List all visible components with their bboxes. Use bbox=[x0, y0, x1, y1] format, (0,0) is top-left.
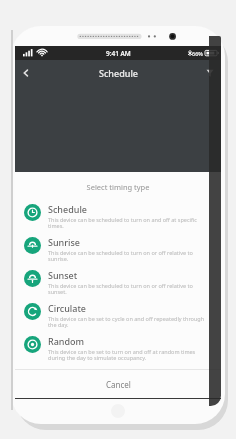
button[interactable]: Schedule bbox=[15, 200, 221, 233]
staticText: This device can be scheduled to turn on … bbox=[48, 282, 211, 296]
staticText: Cancel bbox=[106, 379, 131, 390]
staticText: Sunrise bbox=[48, 236, 81, 248]
staticText: This device can be scheduled to turn on … bbox=[48, 249, 211, 263]
staticText: This device can be scheduled to turn on … bbox=[48, 216, 211, 230]
staticText: Schedule bbox=[99, 67, 138, 79]
button[interactable]: Circulate bbox=[15, 299, 221, 332]
staticText: 66% bbox=[192, 50, 203, 57]
staticText: Schedule bbox=[48, 203, 87, 215]
button[interactable]: Filter bbox=[199, 62, 221, 84]
staticText: This device can be set to turn on and of… bbox=[48, 348, 211, 362]
button[interactable]: Back bbox=[15, 62, 37, 84]
staticText: Sunset bbox=[48, 269, 78, 281]
button[interactable]: Sunset bbox=[15, 266, 221, 299]
button[interactable]: Random bbox=[15, 332, 221, 365]
button[interactable]: Cancel bbox=[15, 370, 221, 398]
staticText: Circulate bbox=[48, 302, 87, 314]
staticText: 9:41 AM bbox=[106, 49, 131, 58]
button[interactable]: Sunrise bbox=[15, 233, 221, 266]
staticText: Select timing type bbox=[15, 182, 221, 192]
staticText: This device can be set to cycle on and o… bbox=[48, 315, 211, 329]
staticText: Random bbox=[48, 335, 85, 347]
